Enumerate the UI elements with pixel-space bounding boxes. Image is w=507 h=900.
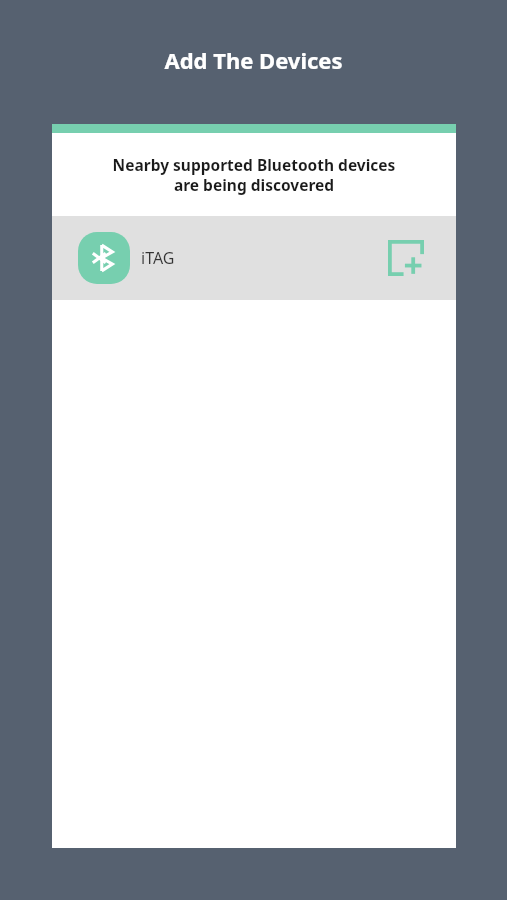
button[interactable]: Add device xyxy=(378,230,434,286)
staticText: iTAG xyxy=(141,247,175,269)
button[interactable]: iTAG xyxy=(52,216,456,300)
staticText: Nearby supported Bluetooth devices are b… xyxy=(62,154,446,196)
staticText: Add The Devices xyxy=(0,45,507,75)
